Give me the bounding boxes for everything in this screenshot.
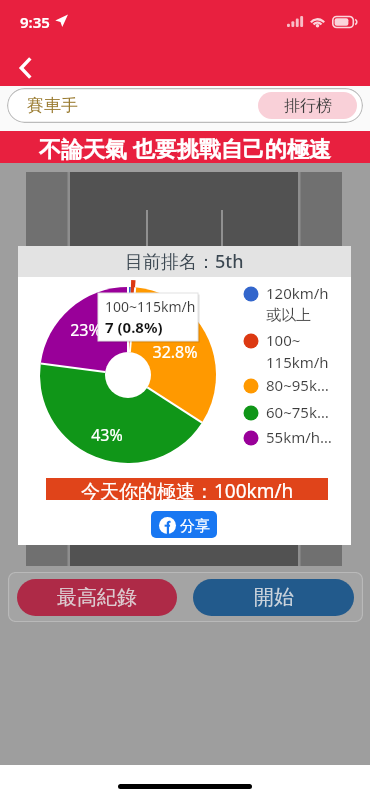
staticText: 43%: [91, 424, 123, 444]
staticText: 100~115km/h: [105, 297, 196, 316]
staticText: 55km/h…: [266, 427, 332, 447]
staticText: 60~75k…: [266, 402, 329, 422]
staticText: 開始: [254, 585, 294, 610]
button[interactable]: 最高紀錄: [17, 579, 177, 616]
staticText: 賽車手: [27, 95, 78, 116]
staticText: 9:35: [20, 12, 50, 32]
staticText: 7 (0.8%): [105, 317, 163, 337]
button[interactable]: 賽車手: [7, 88, 363, 123]
staticText: 最高紀錄: [57, 585, 137, 610]
staticText: 排行榜: [284, 96, 332, 116]
staticText: 120km/h 或以上: [266, 283, 329, 325]
staticText: 分享: [176, 515, 210, 535]
staticText: 今天你的極速：100km/h: [81, 478, 294, 500]
button[interactable]: 分享: [151, 511, 217, 538]
staticText: 32.8%: [152, 341, 198, 361]
button[interactable]: Back: [4, 46, 48, 90]
staticText: 100~ 115km/h: [266, 330, 329, 373]
staticText: 目前排名：5th: [125, 249, 244, 274]
button[interactable]: 排行榜: [258, 92, 357, 119]
staticText: 不論天氣 也要挑戰自己的極速: [39, 133, 331, 163]
button[interactable]: 開始: [193, 579, 354, 616]
staticText: 80~95k…: [266, 375, 329, 395]
staticText: 23%: [70, 319, 102, 339]
